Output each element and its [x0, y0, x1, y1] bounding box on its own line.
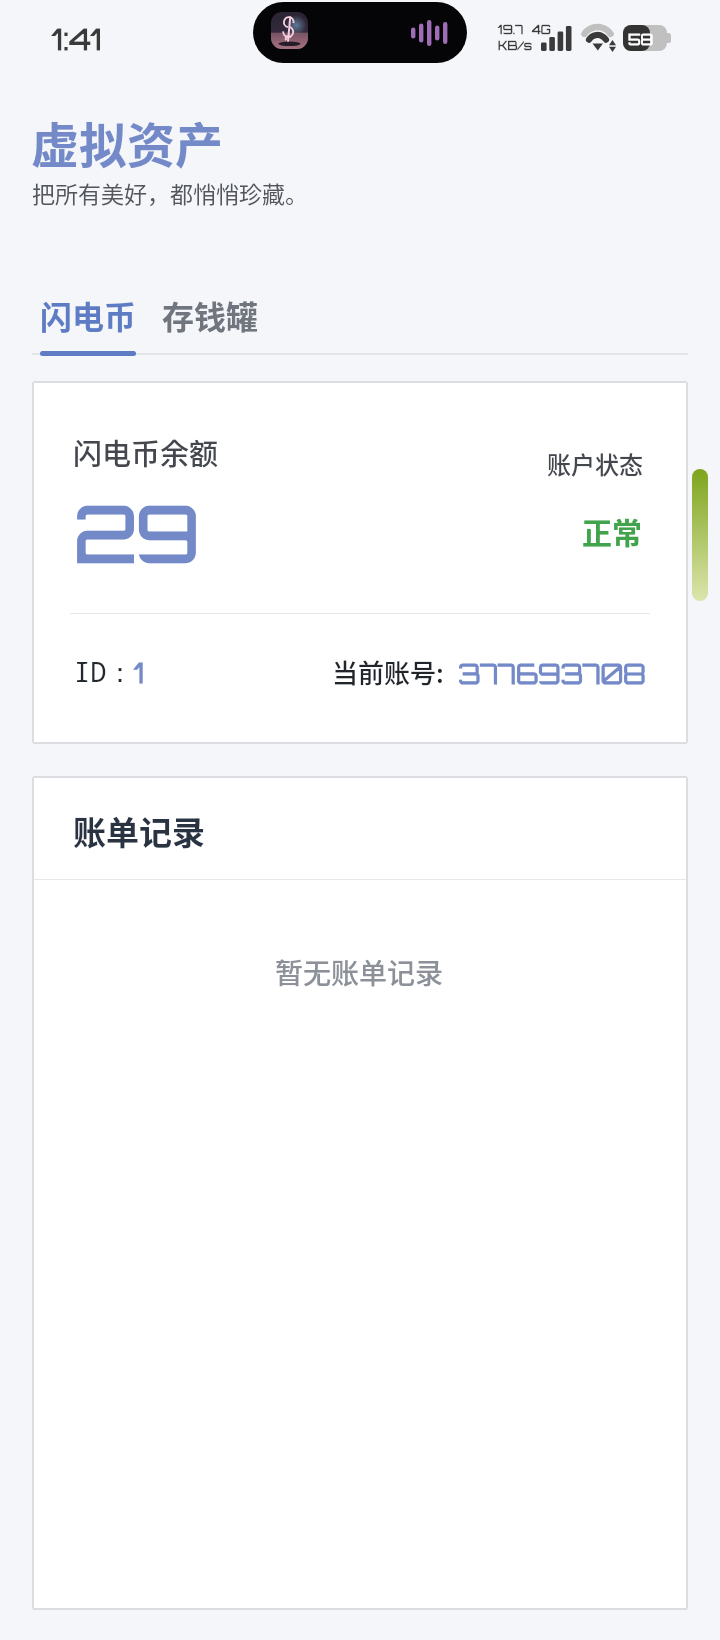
staticText: 闪电币余额 [73, 431, 219, 473]
staticText: 377693708 [458, 657, 646, 691]
staticText: 1:41 [52, 21, 103, 57]
staticText: 4G [532, 22, 551, 37]
staticText: 正常 [582, 509, 642, 552]
staticText: 把所有美好，都悄悄珍藏。 [32, 176, 308, 209]
staticText: 账单记录 [73, 807, 205, 855]
staticText: ID： [74, 653, 134, 690]
button[interactable]: 闪电币 [32, 288, 145, 342]
staticText: 58 [628, 30, 653, 49]
staticText: 闪电币 [40, 292, 137, 338]
button[interactable]: 闪电币余额 [32, 381, 688, 744]
staticText: 暂无账单记录 [275, 952, 444, 993]
staticText: 账户状态 [547, 446, 643, 481]
staticText: 1 [134, 656, 145, 690]
staticText: 19.7 [498, 22, 524, 37]
staticText: 虚拟资产 [31, 107, 224, 177]
button[interactable]: 存钱罐 [154, 288, 267, 342]
staticText: 存钱罐 [162, 292, 259, 338]
staticText: 当前账号: [332, 653, 444, 691]
staticText: KB/s [498, 38, 533, 53]
staticText: 29 [74, 486, 199, 580]
